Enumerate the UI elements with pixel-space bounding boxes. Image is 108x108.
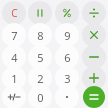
button[interactable]: Divide xyxy=(82,1,106,25)
staticText: 5 xyxy=(37,50,44,65)
button[interactable]: 9 xyxy=(55,23,79,47)
button[interactable]: Clear xyxy=(2,1,26,25)
button[interactable]: Parentheses xyxy=(28,1,52,25)
staticText: 7 xyxy=(11,28,18,43)
staticText: 3 xyxy=(64,71,71,86)
button[interactable]: 4 xyxy=(2,45,26,69)
staticText: C xyxy=(11,6,18,20)
staticText: 6 xyxy=(64,50,71,65)
button[interactable]: Equals xyxy=(83,86,105,108)
button[interactable]: Multiply xyxy=(82,23,106,47)
staticText: 0 xyxy=(37,90,44,105)
button[interactable]: 6 xyxy=(55,45,79,69)
button[interactable]: 5 xyxy=(28,45,52,69)
button[interactable]: 7 xyxy=(2,23,26,47)
button[interactable]: Subtract xyxy=(82,45,106,69)
button[interactable]: 8 xyxy=(28,23,52,47)
button[interactable]: 1 xyxy=(2,66,26,90)
button[interactable]: 3 xyxy=(55,66,79,90)
button[interactable]: Toggle sign xyxy=(2,85,26,108)
staticText: 4 xyxy=(11,50,18,65)
staticText: 2 xyxy=(37,71,44,86)
button[interactable]: 2 xyxy=(28,66,52,90)
staticText: 1 xyxy=(11,71,18,86)
button[interactable]: Percent xyxy=(55,1,79,25)
staticText: 8 xyxy=(37,28,44,43)
button[interactable]: Decimal point xyxy=(55,85,79,108)
button[interactable]: 0 xyxy=(28,85,52,108)
staticText: 9 xyxy=(64,28,71,43)
button[interactable]: Add xyxy=(82,66,106,90)
